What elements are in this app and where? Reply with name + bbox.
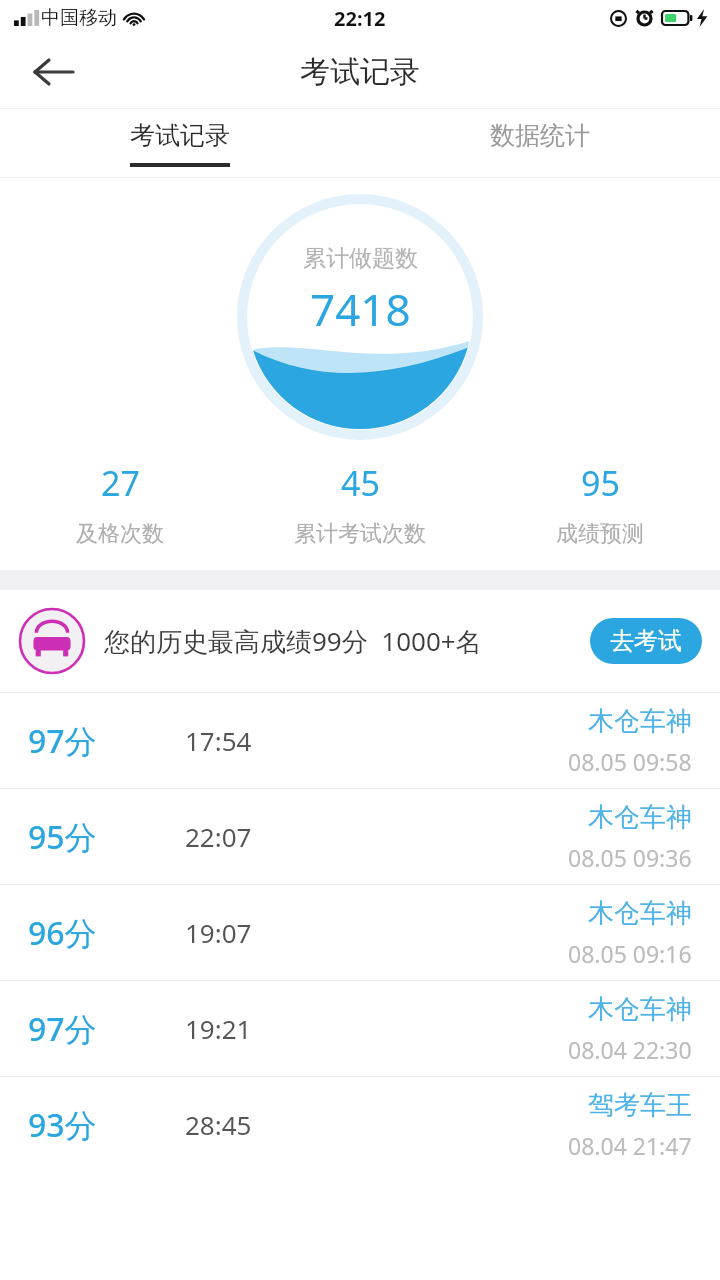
button[interactable]: Back (20, 39, 86, 105)
staticText: 木仓车神 (588, 705, 692, 738)
staticText: 22:12 (334, 5, 386, 32)
button[interactable]: 93分 (0, 1077, 720, 1172)
staticText: 去考试 (610, 626, 682, 656)
staticText: 19:21 (185, 1011, 252, 1046)
staticText: 08.05 09:36 (568, 842, 692, 873)
staticText: 17:54 (185, 723, 252, 758)
staticText: 木仓车神 (588, 993, 692, 1026)
staticText: 驾考车王 (588, 1089, 692, 1122)
button[interactable]: 96分 (0, 885, 720, 980)
staticText: 木仓车神 (588, 801, 692, 834)
staticText: 数据统计 (490, 120, 590, 151)
staticText: 28:45 (185, 1107, 252, 1142)
button[interactable]: 95 (480, 460, 720, 548)
button[interactable]: 去考试 (590, 618, 702, 664)
staticText: 97分 (28, 1007, 97, 1051)
button[interactable]: 45 (240, 460, 480, 548)
staticText: 及格次数 (76, 520, 164, 548)
staticText: 考试记录 (300, 53, 420, 91)
staticText: 您的历史最高成绩99分 1000+名 (104, 623, 482, 659)
button[interactable]: 考试记录 (0, 108, 360, 178)
staticText: 96分 (28, 911, 97, 955)
button[interactable]: 数据统计 (360, 108, 720, 178)
staticText: 累计考试次数 (294, 520, 426, 548)
staticText: 95 (581, 460, 620, 506)
staticText: 19:07 (185, 915, 252, 950)
staticText: 08.05 09:16 (568, 938, 692, 969)
staticText: 93分 (28, 1103, 97, 1147)
staticText: 08.04 22:30 (568, 1034, 692, 1065)
staticText: 考试记录 (130, 120, 230, 151)
staticText: 累计做题数 (303, 244, 418, 273)
button[interactable]: 95分 (0, 789, 720, 884)
staticText: 7418 (310, 279, 411, 339)
staticText: 中国移动 (41, 6, 117, 30)
button[interactable]: 97分 (0, 981, 720, 1076)
staticText: 08.04 21:47 (568, 1130, 692, 1161)
staticText: 45 (341, 460, 380, 506)
staticText: 27 (101, 460, 140, 506)
staticText: 木仓车神 (588, 897, 692, 930)
staticText: 08.05 09:58 (568, 746, 692, 777)
staticText: 97分 (28, 719, 97, 763)
staticText: 95分 (28, 815, 97, 859)
button[interactable]: 97分 (0, 693, 720, 788)
button[interactable]: 27 (0, 460, 240, 548)
staticText: 22:07 (185, 819, 252, 854)
button[interactable]: 您的历史最高成绩99分 1000+名 (0, 590, 720, 692)
staticText: 成绩预测 (556, 520, 644, 548)
